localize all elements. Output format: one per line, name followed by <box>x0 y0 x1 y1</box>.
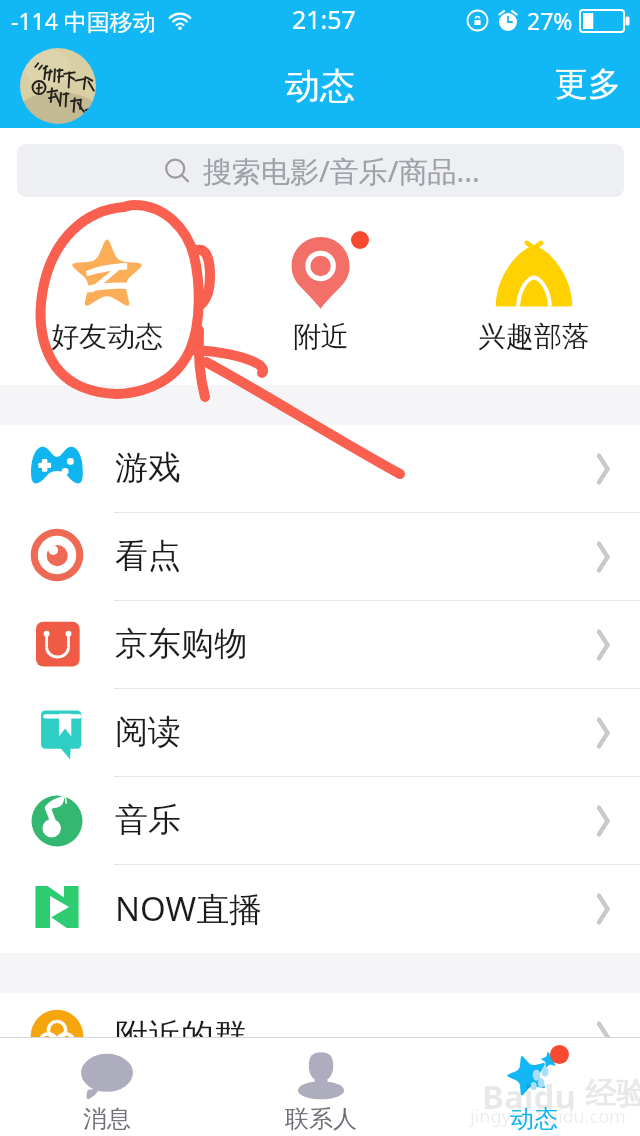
button[interactable]: 音乐 <box>0 777 640 865</box>
button[interactable]: 游戏 <box>0 425 640 513</box>
staticText: 动态 <box>285 64 355 108</box>
staticText: 附近的群 <box>115 1015 247 1057</box>
staticText: 附近 <box>293 319 349 354</box>
staticText: 阅读 <box>115 711 181 753</box>
staticText: 更多 <box>555 63 621 105</box>
staticText: 联系人 <box>285 1104 357 1134</box>
button[interactable]: 联系人 <box>214 1038 427 1136</box>
button[interactable]: 更多 <box>555 65 621 107</box>
button[interactable]: 京东购物 <box>0 601 640 689</box>
staticText: 动态 <box>510 1104 558 1134</box>
staticText: -114 中国移动 <box>11 5 156 36</box>
button[interactable]: 附近 <box>214 197 427 385</box>
button[interactable]: 好友动态 <box>0 197 214 385</box>
button[interactable]: 附近的群 <box>0 993 640 1081</box>
staticText: 27% <box>527 5 573 36</box>
button[interactable]: Profile <box>20 48 96 124</box>
staticText: 音乐 <box>115 799 181 841</box>
staticText: 好友动态 <box>51 319 163 354</box>
button[interactable]: 消息 <box>0 1038 214 1136</box>
staticText: 兴趣部落 <box>478 319 590 354</box>
button[interactable]: NOW直播 <box>0 865 640 953</box>
staticText: 消息 <box>83 1104 131 1134</box>
staticText: 京东购物 <box>115 623 247 665</box>
button[interactable]: 搜索电影/音乐/商品... <box>17 144 624 197</box>
staticText: Baidu <box>482 1074 585 1119</box>
staticText: 搜索电影/音乐/商品... <box>203 151 480 191</box>
staticText: 游戏 <box>115 447 181 489</box>
button[interactable]: 阅读 <box>0 689 640 777</box>
button[interactable]: 兴趣部落 <box>427 197 640 385</box>
staticText: jingyan.baidu.com <box>470 1104 626 1129</box>
button[interactable]: 动态 <box>427 1038 640 1136</box>
button[interactable]: 看点 <box>0 513 640 601</box>
staticText: 看点 <box>115 535 181 577</box>
staticText: NOW直播 <box>115 886 263 931</box>
staticText: 21:57 <box>292 2 356 36</box>
staticText: 经验 <box>585 1074 640 1113</box>
